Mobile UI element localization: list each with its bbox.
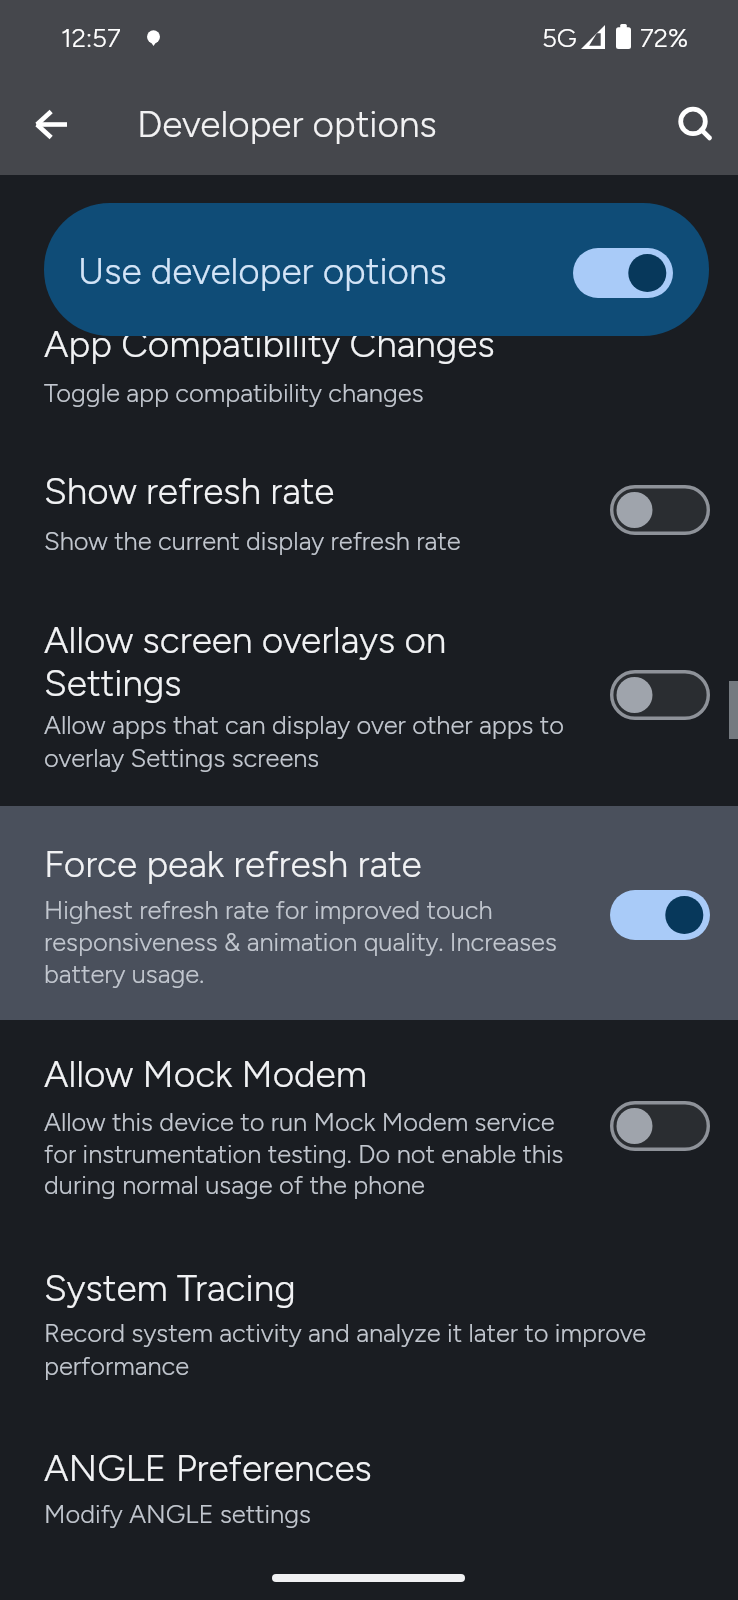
button[interactable]: Back <box>0 80 104 167</box>
button[interactable]: Toggle off <box>610 1101 710 1151</box>
button[interactable]: Toggle on <box>610 890 710 940</box>
staticText: for instrumentation testing. Do not enab… <box>44 1139 564 1170</box>
staticText: Modify ANGLE settings <box>44 1499 311 1530</box>
button[interactable]: Toggle off <box>610 485 710 535</box>
button[interactable]: Toggle on <box>573 248 673 298</box>
staticText: ANGLE Preferences <box>44 1446 372 1490</box>
staticText: Settings <box>44 661 182 705</box>
staticText: 12:57 <box>61 22 121 53</box>
staticText: Show refresh rate <box>44 469 335 513</box>
staticText: during normal usage of the phone <box>44 1170 425 1201</box>
button[interactable] <box>0 806 738 1020</box>
button[interactable] <box>0 1020 738 1232</box>
staticText: Toggle app compatibility changes <box>44 378 424 409</box>
staticText: Allow this device to run Mock Modem serv… <box>44 1107 555 1138</box>
staticText: Highest refresh rate for improved touch <box>44 895 493 926</box>
button[interactable]: Toggle off <box>610 670 710 720</box>
staticText: Use developer options <box>78 249 447 293</box>
staticText: Allow screen overlays on <box>44 618 447 662</box>
staticText: Allow Mock Modem <box>44 1052 367 1096</box>
button[interactable]: Use developer options <box>44 203 709 336</box>
staticText: responsiveness & animation quality. Incr… <box>44 927 557 958</box>
button[interactable] <box>0 1412 738 1560</box>
staticText: Allow apps that can display over other a… <box>44 710 565 741</box>
staticText: Show the current display refresh rate <box>44 526 461 557</box>
button[interactable] <box>0 424 738 572</box>
button[interactable]: Search <box>648 80 738 167</box>
button[interactable] <box>0 175 738 424</box>
button[interactable] <box>0 572 738 806</box>
staticText: System Tracing <box>44 1266 296 1310</box>
staticText: 72% <box>640 22 689 53</box>
staticText: Record system activity and analyze it la… <box>44 1318 647 1349</box>
staticText: Developer options <box>137 102 437 146</box>
staticText: App Compatibility Changes <box>44 322 495 366</box>
button[interactable] <box>0 1232 738 1412</box>
staticText: 5G <box>542 22 577 53</box>
staticText: battery usage. <box>44 959 205 990</box>
staticText: overlay Settings screens <box>44 743 320 774</box>
staticText: performance <box>44 1351 190 1382</box>
button[interactable] <box>0 806 738 1020</box>
staticText: Force peak refresh rate <box>44 842 422 886</box>
